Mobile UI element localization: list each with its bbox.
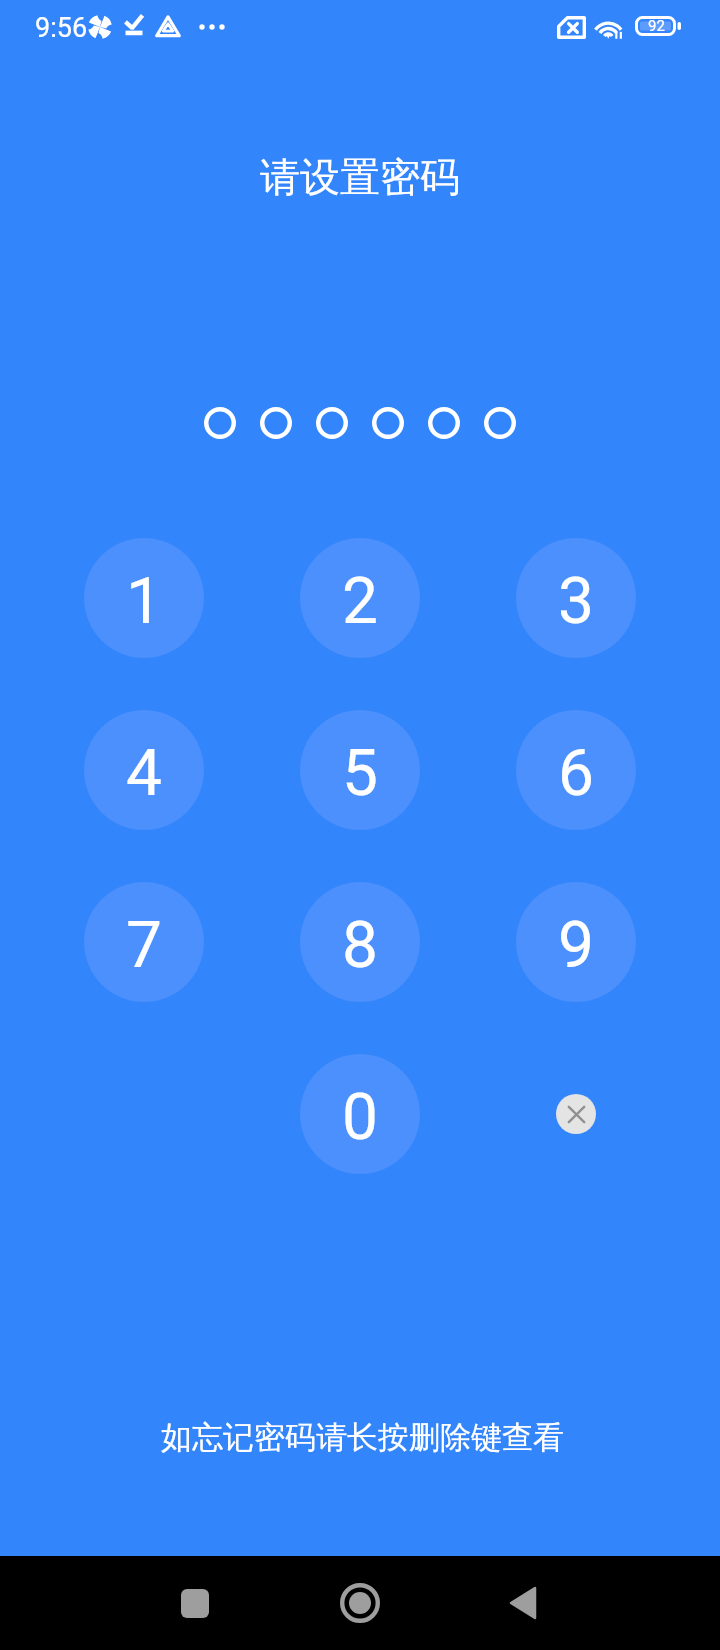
button[interactable]: 1 bbox=[84, 538, 204, 658]
button[interactable]: 6 bbox=[516, 710, 636, 830]
button[interactable]: 2 bbox=[300, 538, 420, 658]
staticText: 4 bbox=[126, 736, 162, 811]
button[interactable]: Recents bbox=[135, 1556, 255, 1650]
button[interactable]: Back bbox=[463, 1556, 583, 1650]
staticText: 9 bbox=[558, 908, 594, 983]
staticText: 8 bbox=[342, 908, 378, 983]
staticText: 1 bbox=[126, 564, 162, 639]
staticText: 2 bbox=[342, 564, 378, 639]
staticText: 7 bbox=[126, 908, 162, 983]
button[interactable]: 4 bbox=[84, 710, 204, 830]
button[interactable]: Home bbox=[300, 1556, 420, 1650]
staticText: 如忘记密码请长按删除键查看 bbox=[161, 1418, 564, 1457]
staticText: 6 bbox=[558, 736, 594, 811]
button[interactable]: 3 bbox=[516, 538, 636, 658]
staticText: 请设置密码 bbox=[260, 152, 460, 202]
button[interactable]: 0 bbox=[300, 1054, 420, 1174]
button[interactable]: 5 bbox=[300, 710, 420, 830]
staticText: 0 bbox=[342, 1080, 378, 1155]
button[interactable]: 9 bbox=[516, 882, 636, 1002]
staticText: 5 bbox=[342, 736, 378, 811]
staticText: 92 bbox=[648, 17, 665, 35]
button[interactable]: 7 bbox=[84, 882, 204, 1002]
button[interactable]: Delete bbox=[556, 1094, 596, 1134]
button[interactable]: 8 bbox=[300, 882, 420, 1002]
staticText: 3 bbox=[558, 564, 594, 639]
staticText: 9:56 bbox=[35, 12, 88, 44]
